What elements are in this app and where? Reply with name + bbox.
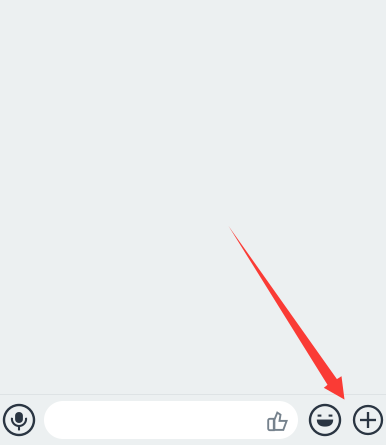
button[interactable]: Voice message — [4, 395, 34, 445]
button[interactable]: More — [354, 395, 382, 445]
button[interactable]: Stickers — [258, 401, 298, 439]
button[interactable]: Emoji — [310, 395, 340, 445]
button[interactable]: Message — [44, 401, 298, 439]
